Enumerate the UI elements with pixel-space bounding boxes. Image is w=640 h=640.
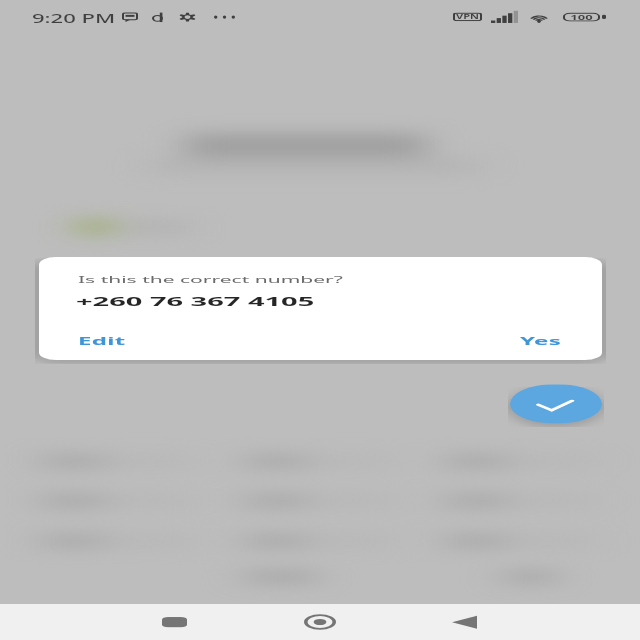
button[interactable]: Back xyxy=(425,604,504,640)
button[interactable]: Recents xyxy=(134,604,214,640)
staticText: +260 76 367 4105 xyxy=(76,292,315,309)
staticText: VPN xyxy=(456,13,479,20)
staticText: Yes xyxy=(520,333,562,348)
button[interactable]: Confirm call xyxy=(510,384,602,424)
button[interactable]: Yes xyxy=(502,329,580,352)
button[interactable]: Home xyxy=(280,604,360,640)
staticText: Edit xyxy=(78,333,126,348)
staticText: 9:20 PM xyxy=(32,9,116,26)
staticText: 100 xyxy=(570,13,593,21)
staticText: Is this the correct number? xyxy=(78,273,343,286)
button[interactable]: Edit xyxy=(60,329,144,352)
